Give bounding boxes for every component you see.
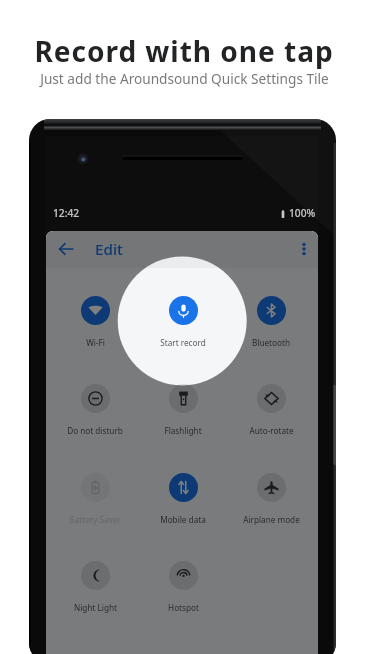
button[interactable]: Back [54, 237, 78, 261]
staticText: Just add the Aroundsound Quick Settings … [40, 69, 329, 88]
staticText: Battery Saver [69, 514, 121, 525]
staticText: 100% [289, 206, 316, 220]
staticText: Do not disturb [67, 425, 123, 436]
staticText: Record with one tap [34, 32, 334, 70]
staticText: Edit [95, 239, 123, 260]
staticText: Bluetooth [252, 337, 290, 348]
button[interactable]: Start record [141, 296, 225, 348]
staticText: Night Light [74, 602, 117, 613]
button[interactable]: Hotspot [141, 561, 225, 613]
button[interactable]: Wi-Fi [53, 296, 137, 348]
button[interactable]: More options [292, 237, 316, 261]
staticText: Wi-Fi [86, 337, 105, 348]
button[interactable]: Mobile data [141, 473, 225, 525]
staticText: 12:42 [53, 206, 80, 220]
button[interactable]: Bluetooth [229, 296, 313, 348]
staticText: Mobile data [160, 514, 206, 525]
staticText: Auto-rotate [249, 425, 294, 436]
button[interactable]: Airplane mode [229, 473, 313, 525]
staticText: Airplane mode [243, 514, 300, 525]
button[interactable]: Flashlight [141, 384, 225, 436]
button[interactable]: Night Light [53, 561, 137, 613]
button[interactable]: Auto-rotate [229, 384, 313, 436]
staticText: Flashlight [164, 425, 202, 436]
staticText: Start record [160, 337, 206, 348]
staticText: Hotspot [168, 602, 199, 613]
button[interactable]: Do not disturb [53, 384, 137, 436]
button[interactable]: Battery Saver [53, 473, 137, 525]
